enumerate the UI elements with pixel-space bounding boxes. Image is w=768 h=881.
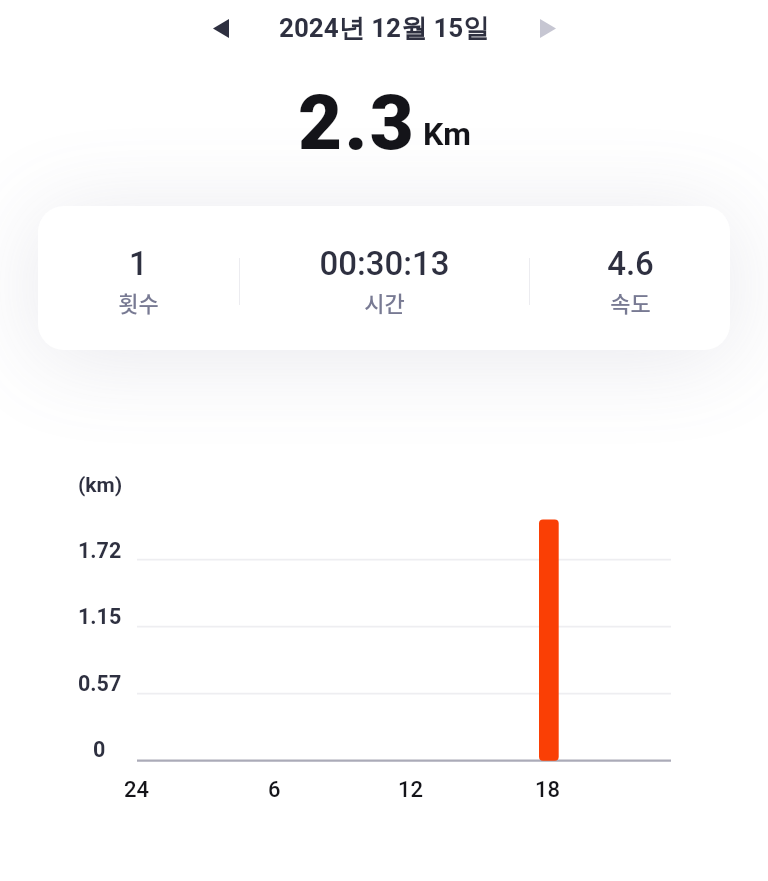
- button[interactable]: Next day: [526, 6, 570, 50]
- staticText: 0: [93, 737, 106, 762]
- staticText: 00:30:13: [319, 244, 450, 283]
- staticText: Km: [423, 115, 472, 153]
- staticText: 횟수: [118, 286, 159, 318]
- staticText: 18: [535, 777, 561, 803]
- staticText: 1: [129, 244, 148, 283]
- button[interactable]: Previous day: [199, 6, 243, 50]
- staticText: 6: [268, 777, 281, 803]
- staticText: 시간: [364, 286, 405, 318]
- button[interactable]: 00:30:13: [240, 244, 529, 318]
- staticText: 12: [398, 777, 424, 803]
- staticText: (km): [78, 473, 123, 498]
- staticText: 2.3: [298, 78, 417, 167]
- staticText: 1.15: [78, 604, 122, 629]
- staticText: 1.72: [78, 538, 122, 563]
- button[interactable]: 1: [38, 244, 239, 318]
- staticText: 0.57: [78, 671, 122, 696]
- staticText: 4.6: [607, 244, 654, 283]
- staticText: 24: [124, 777, 150, 803]
- staticText: 속도: [610, 286, 651, 318]
- staticText: 2024년 12월 15일: [279, 12, 490, 45]
- button[interactable]: 4.6: [530, 244, 730, 318]
